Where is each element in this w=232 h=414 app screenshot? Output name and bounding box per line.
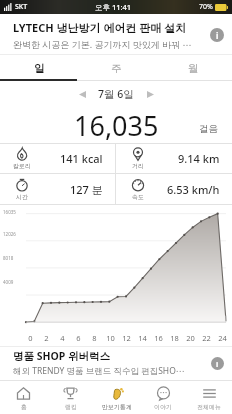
staticText: LYTECH 냉난방기 에어컨 판매 설치 <box>13 20 187 35</box>
button[interactable]: 명품 SHOP 위버럭스 <box>0 346 232 380</box>
staticText: i <box>216 359 219 369</box>
staticText: 랭킹 <box>65 403 77 411</box>
staticText: 월 <box>188 62 199 75</box>
button[interactable]: LYTECH 냉난방기 에어컨 판매 설치 <box>0 14 232 55</box>
staticText: 16,035 <box>74 107 159 143</box>
staticText: 걸음 <box>199 123 218 135</box>
button[interactable]: 만보기통계 <box>94 382 140 414</box>
staticText: 속도 <box>132 193 144 201</box>
staticText: 0 <box>28 333 33 343</box>
staticText: 4 <box>60 333 65 343</box>
staticText: 8 <box>92 333 97 343</box>
staticText: 완벽한 시공은 기본. 공기까지 맛있게 바꿔 ⋯ <box>13 38 192 50</box>
button[interactable]: 칼로리 <box>0 144 115 173</box>
staticText: i <box>216 30 219 41</box>
staticText: 10 <box>106 333 115 343</box>
button[interactable]: 시간 <box>0 174 115 204</box>
staticText: 6.53 km/h <box>167 182 220 197</box>
staticText: 2 <box>44 333 49 343</box>
staticText: 칼로리 <box>13 162 31 170</box>
button[interactable]: 월 <box>155 55 232 81</box>
staticText: 24 <box>218 333 227 343</box>
button[interactable]: 속도 <box>116 174 232 204</box>
staticText: 전체메뉴 <box>197 403 221 411</box>
staticText: 만보기통계 <box>102 403 132 411</box>
staticText: 127 분 <box>70 182 103 197</box>
staticText: 9.14 km <box>178 151 220 166</box>
staticText: 8018 <box>3 255 14 261</box>
button[interactable]: 다음 날짜 <box>140 84 160 104</box>
button[interactable]: 광고 정보 <box>211 357 224 370</box>
staticText: 이야기 <box>154 403 172 411</box>
staticText: 일 <box>34 62 45 75</box>
staticText: 141 kcal <box>60 151 103 166</box>
button[interactable]: 거리 <box>116 144 232 173</box>
staticText: 22 <box>202 333 211 343</box>
staticText: 16 <box>154 333 163 343</box>
staticText: 70% <box>199 2 213 12</box>
staticText: 18 <box>170 333 179 343</box>
staticText: 명품 SHOP 위버럭스 <box>13 349 111 363</box>
staticText: 7월 6일 <box>98 87 134 101</box>
staticText: 12026 <box>3 231 16 237</box>
staticText: 4009 <box>3 279 14 285</box>
staticText: 주 <box>111 62 122 75</box>
staticText: 거리 <box>132 162 144 170</box>
button[interactable]: 광고 정보 <box>210 28 224 42</box>
button[interactable]: 랭킹 <box>47 382 94 414</box>
staticText: 해외 TRENDY 명품 브랜드 직수입 편집SHO⋯ <box>13 365 185 377</box>
button[interactable]: 홈 <box>0 382 47 414</box>
button[interactable]: 이야기 <box>140 382 186 414</box>
staticText: 20 <box>186 333 195 343</box>
button[interactable]: 전체메뉴 <box>186 382 232 414</box>
button[interactable]: 일 <box>0 55 78 81</box>
staticText: 오후 11:41 <box>95 2 132 12</box>
button[interactable]: 주 <box>78 55 155 81</box>
button[interactable]: 이전 날짜 <box>72 84 92 104</box>
staticText: 12 <box>122 333 131 343</box>
staticText: 6 <box>76 333 81 343</box>
staticText: 홈 <box>21 403 27 411</box>
staticText: SKT <box>15 2 28 12</box>
staticText: 시간 <box>16 193 28 201</box>
staticText: 16035 <box>3 209 16 215</box>
staticText: 14 <box>138 333 147 343</box>
